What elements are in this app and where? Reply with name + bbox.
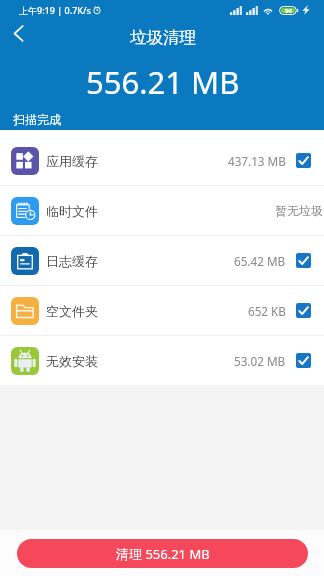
staticText: 53.02 MB: [234, 353, 286, 369]
staticText: 空文件夹: [46, 303, 98, 319]
staticText: 扫描完成: [13, 112, 61, 127]
staticText: 无效安装: [46, 353, 98, 369]
button[interactable]: Back: [0, 15, 36, 51]
staticText: 437.13 MB: [228, 153, 286, 169]
staticText: 临时文件: [46, 203, 98, 219]
staticText: 清理 556.21 MB: [116, 545, 210, 563]
button[interactable]: 临时文件: [0, 186, 324, 235]
staticText: 556.21 MB: [86, 61, 240, 103]
staticText: 上午9:19 | 0.7K/s: [19, 4, 91, 16]
button[interactable]: 应用缓存: [0, 136, 324, 185]
staticText: 652 KB: [248, 303, 286, 319]
staticText: 暂无垃圾: [275, 203, 323, 218]
button[interactable]: 清理 556.21 MB: [17, 539, 308, 568]
staticText: 日志缓存: [46, 253, 98, 269]
staticText: 垃圾清理: [130, 27, 196, 48]
staticText: 90: [285, 7, 292, 15]
button[interactable]: 日志缓存: [0, 236, 324, 285]
button[interactable]: 无效安装: [0, 336, 324, 385]
staticText: 应用缓存: [46, 153, 98, 169]
staticText: 65.42 MB: [234, 253, 286, 269]
button[interactable]: 空文件夹: [0, 286, 324, 335]
